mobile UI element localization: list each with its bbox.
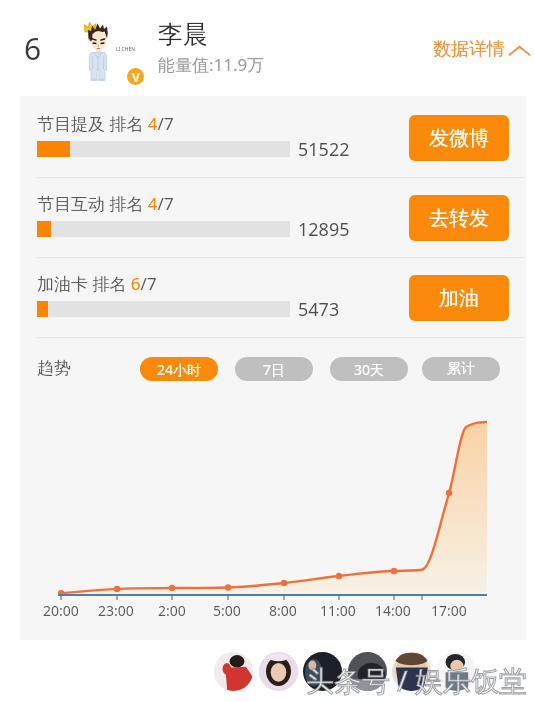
staticText: LI CHEN (116, 46, 136, 53)
button[interactable]: 用户头像 5 (392, 652, 431, 691)
staticText: 发微博 (429, 126, 489, 151)
staticText: 加油卡 排名 6/7 (37, 272, 157, 295)
button[interactable]: 发微博 (409, 115, 509, 161)
staticText: 17:00 (431, 601, 467, 620)
button[interactable]: 加油卡 排名 (20, 256, 400, 336)
staticText: 数据详情 (433, 38, 505, 61)
staticText: 11:00 (320, 601, 356, 620)
staticText: 头条号 / 娱乐饭堂 (306, 661, 527, 699)
staticText: 节目提及 排名 4/7 (37, 112, 174, 135)
button[interactable]: 用户头像 3 (303, 652, 342, 691)
staticText: 累计 (447, 360, 475, 378)
staticText: 5473 (298, 297, 340, 322)
button[interactable]: 24小时 (140, 357, 218, 381)
staticText: 李晨 (158, 19, 208, 50)
button[interactable]: 用户头像 6 (437, 652, 476, 691)
button[interactable]: 30天 (330, 357, 408, 381)
button[interactable]: 7日 (235, 357, 313, 381)
button[interactable]: 去转发 (409, 195, 509, 241)
button[interactable]: 累计 (422, 357, 500, 381)
button[interactable]: 用户头像 4 (348, 652, 387, 691)
staticText: 趋势 (37, 358, 71, 379)
button[interactable]: 数据详情 (433, 38, 530, 61)
button[interactable]: 用户头像 1 (214, 652, 253, 691)
button[interactable]: 节目互动 排名 (20, 176, 400, 256)
staticText: 51522 (298, 137, 350, 162)
staticText: V (132, 69, 140, 85)
staticText: 2:00 (158, 601, 186, 620)
staticText: 节目互动 排名 4/7 (37, 192, 174, 215)
staticText: 12895 (298, 217, 350, 242)
staticText: 6 (24, 28, 42, 69)
staticText: 8:00 (269, 601, 297, 620)
button[interactable]: 李晨 个人资料 (16, 4, 276, 92)
staticText: 24小时 (157, 360, 202, 379)
staticText: 去转发 (429, 206, 489, 231)
staticText: 14:00 (375, 601, 411, 620)
staticText: 30天 (354, 360, 385, 379)
staticText: 5:00 (213, 601, 241, 620)
staticText: 能量值:11.9万 (158, 53, 265, 76)
staticText: 20:00 (43, 601, 79, 620)
staticText: 头条号 / 娱乐饭堂 (306, 661, 527, 699)
staticText: 23:00 (98, 601, 134, 620)
staticText: 加油 (439, 286, 479, 311)
button[interactable]: 加油 (409, 275, 509, 321)
staticText: 7日 (263, 360, 286, 379)
button[interactable]: 节目提及 排名 (20, 96, 400, 176)
button[interactable]: 用户头像 2 (259, 652, 298, 691)
